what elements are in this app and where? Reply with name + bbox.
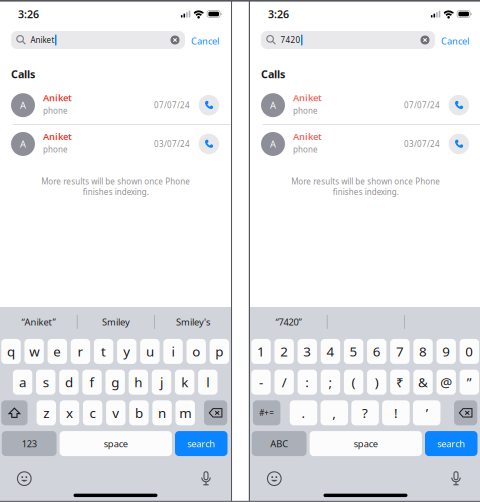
staticText: Aniket bbox=[293, 130, 322, 143]
button[interactable]: ; bbox=[321, 370, 340, 395]
button[interactable]: x bbox=[60, 400, 79, 425]
button[interactable]: ( bbox=[344, 370, 363, 395]
button[interactable]: h bbox=[129, 370, 148, 395]
button[interactable]: b bbox=[129, 400, 149, 425]
button[interactable]: Delete bbox=[204, 400, 227, 425]
button[interactable]: f bbox=[82, 370, 102, 395]
button[interactable]: space bbox=[310, 431, 422, 456]
button[interactable]: Emoji keyboard bbox=[13, 468, 35, 490]
button[interactable]: s bbox=[36, 370, 55, 395]
staticText: More results will be shown once Phone fi… bbox=[291, 176, 440, 197]
button[interactable]: A bbox=[0, 86, 231, 124]
staticText: #+= bbox=[259, 407, 274, 418]
staticText: phone bbox=[43, 144, 68, 155]
button[interactable]: ” bbox=[460, 370, 479, 395]
staticText: j bbox=[160, 373, 163, 391]
staticText: Aniket bbox=[293, 91, 322, 104]
staticText: ? bbox=[362, 404, 368, 422]
button[interactable]: : bbox=[298, 370, 317, 395]
staticText: Aniket bbox=[30, 35, 54, 45]
button[interactable]: p bbox=[210, 339, 229, 364]
staticText: . bbox=[301, 404, 305, 422]
button[interactable]: Emoji keyboard bbox=[263, 468, 285, 490]
button[interactable]: Dictation bbox=[195, 468, 217, 490]
button[interactable]: 123 bbox=[2, 431, 57, 456]
button[interactable]: A bbox=[250, 86, 480, 124]
staticText: Cancel bbox=[191, 35, 219, 47]
button[interactable]: Delete bbox=[454, 400, 477, 425]
staticText: 03/07/24 bbox=[404, 139, 440, 149]
staticText: e bbox=[53, 343, 61, 360]
button[interactable]: Smiley bbox=[78, 310, 154, 334]
button[interactable]: d bbox=[59, 370, 79, 395]
button[interactable]: q bbox=[1, 339, 21, 364]
button[interactable]: space bbox=[60, 431, 172, 456]
button[interactable]: a bbox=[13, 370, 32, 395]
button[interactable]: . bbox=[290, 400, 317, 425]
button[interactable]: 6 bbox=[367, 339, 386, 364]
button[interactable]: r bbox=[71, 339, 90, 364]
button[interactable]: o bbox=[186, 339, 206, 364]
button[interactable]: ? bbox=[351, 400, 379, 425]
staticText: Smiley bbox=[102, 316, 130, 328]
staticText: n bbox=[158, 404, 166, 422]
staticText: 07/07/24 bbox=[154, 100, 190, 110]
button[interactable]: search bbox=[425, 431, 477, 456]
button[interactable]: “7420” bbox=[250, 310, 327, 334]
button[interactable]: 7 bbox=[390, 339, 410, 364]
button[interactable]: , bbox=[321, 400, 348, 425]
staticText: space bbox=[354, 437, 378, 450]
button[interactable]: - bbox=[251, 370, 271, 395]
button[interactable]: @ bbox=[436, 370, 456, 395]
button[interactable]: 8 bbox=[413, 339, 433, 364]
staticText: 4 bbox=[326, 343, 334, 360]
button[interactable]: j bbox=[152, 370, 171, 395]
button[interactable]: Smiley's bbox=[155, 310, 231, 334]
staticText: p bbox=[215, 343, 223, 360]
button[interactable]: 5 bbox=[344, 339, 363, 364]
button[interactable]: / bbox=[274, 370, 294, 395]
button[interactable]: z bbox=[37, 400, 56, 425]
staticText: 7420 bbox=[280, 35, 300, 45]
button[interactable]: 0 bbox=[460, 339, 479, 364]
button[interactable]: n bbox=[152, 400, 172, 425]
button[interactable]: Shift bbox=[1, 400, 27, 425]
button[interactable]: c bbox=[83, 400, 102, 425]
button[interactable]: m bbox=[175, 400, 195, 425]
button[interactable]: Dictation bbox=[445, 468, 467, 490]
button[interactable]: y bbox=[117, 339, 136, 364]
button[interactable]: u bbox=[140, 339, 160, 364]
button[interactable]: A bbox=[0, 125, 231, 163]
button[interactable]: t bbox=[94, 339, 113, 364]
staticText: 7 bbox=[396, 343, 404, 360]
button[interactable]: 9 bbox=[436, 339, 456, 364]
button[interactable]: 4 bbox=[321, 339, 340, 364]
staticText: search bbox=[187, 437, 215, 450]
staticText: Aniket bbox=[43, 91, 72, 104]
button[interactable]: search bbox=[175, 431, 227, 456]
button[interactable]: e bbox=[48, 339, 67, 364]
button[interactable]: Cancel bbox=[435, 31, 475, 49]
button[interactable]: w bbox=[24, 339, 44, 364]
button[interactable]: ₹ bbox=[390, 370, 410, 395]
button[interactable]: ) bbox=[367, 370, 386, 395]
button[interactable]: Cancel bbox=[185, 31, 225, 49]
button[interactable]: A bbox=[250, 125, 480, 163]
button[interactable]: v bbox=[106, 400, 125, 425]
button[interactable]: ABC bbox=[252, 431, 306, 456]
button[interactable]: g bbox=[105, 370, 125, 395]
staticText: o bbox=[192, 343, 200, 360]
button[interactable]: “Aniket” bbox=[0, 310, 77, 334]
button[interactable]: k bbox=[175, 370, 194, 395]
button[interactable]: #+= bbox=[253, 400, 280, 425]
button[interactable]: 3 bbox=[298, 339, 317, 364]
button[interactable]: 2 bbox=[274, 339, 294, 364]
button[interactable]: 1 bbox=[251, 339, 271, 364]
button[interactable]: i bbox=[163, 339, 183, 364]
button[interactable]: & bbox=[413, 370, 433, 395]
button[interactable]: l bbox=[198, 370, 217, 395]
button[interactable]: ’ bbox=[413, 400, 440, 425]
button[interactable]: ! bbox=[382, 400, 410, 425]
